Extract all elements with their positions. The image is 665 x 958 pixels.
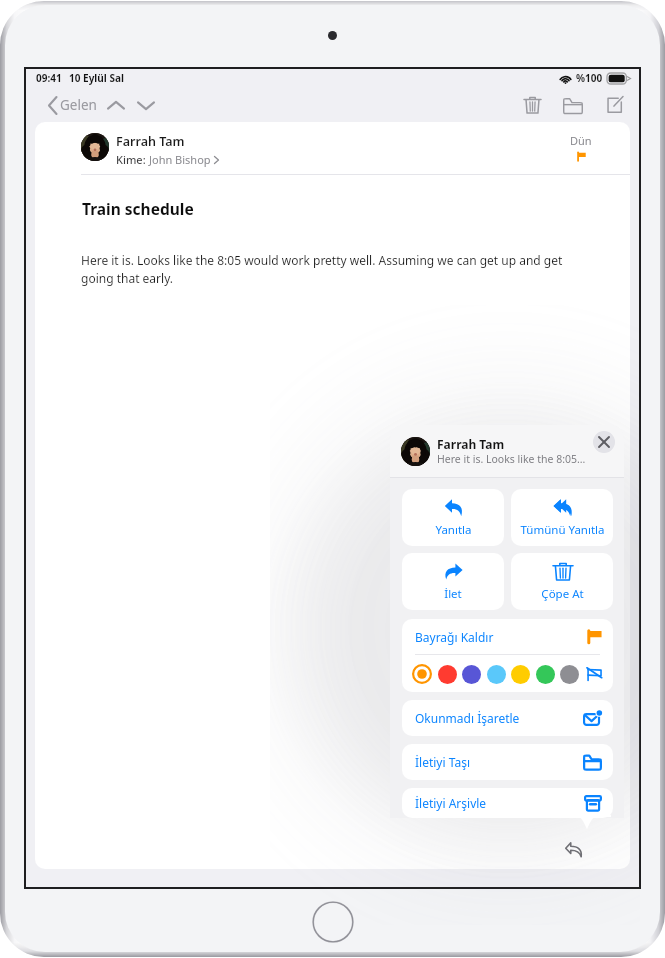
button[interactable]: Flag color <box>412 664 432 684</box>
button[interactable]: Yanıtla <box>402 489 504 546</box>
staticText: Here it is. Looks like the 8:05 would wo… <box>81 252 578 287</box>
staticText: Train schedule <box>82 198 194 219</box>
button[interactable]: İlet <box>402 553 504 610</box>
button[interactable]: Çöpe At <box>511 553 613 610</box>
staticText: Yanıtla <box>435 522 472 538</box>
staticText: Farrah Tam <box>116 133 185 150</box>
staticText: İletiyi Taşı <box>415 754 470 770</box>
staticText: Okunmadı İşaretle <box>415 710 520 726</box>
button[interactable]: Okunmadı İşaretle <box>402 700 613 736</box>
staticText: Kime: <box>116 152 149 167</box>
button[interactable]: Flag color <box>510 664 530 684</box>
staticText: İlet <box>444 586 462 602</box>
button[interactable]: Next message <box>133 92 159 118</box>
button[interactable]: Move to folder <box>558 90 588 120</box>
button[interactable]: Flag color <box>461 664 481 684</box>
button[interactable]: Flag color <box>535 664 555 684</box>
staticText: Tümünü Yanıtla <box>520 522 605 538</box>
button[interactable]: Compose <box>599 90 629 120</box>
button[interactable]: İletiyi Arşivle <box>402 788 613 818</box>
button[interactable]: Tümünü Yanıtla <box>511 489 613 546</box>
button[interactable]: İletiyi Taşı <box>402 744 613 780</box>
staticText: Bayrağı Kaldır <box>415 629 494 645</box>
staticText: 09:41 <box>36 71 62 85</box>
staticText: John Bishop <box>149 152 211 167</box>
button[interactable]: Reply <box>560 835 588 863</box>
staticText: Gelen <box>60 96 97 114</box>
button[interactable]: Bayrağı Kaldır <box>402 619 613 654</box>
button[interactable]: Flag color <box>437 664 457 684</box>
staticText: 10 Eylül Sal <box>69 71 124 85</box>
button[interactable]: Flag color <box>486 664 506 684</box>
button[interactable]: Previous message <box>103 92 129 118</box>
button[interactable]: Gelen <box>44 92 101 118</box>
button[interactable]: Close <box>593 431 615 453</box>
staticText: Farrah Tam <box>437 436 505 452</box>
button[interactable]: Delete <box>517 90 547 120</box>
staticText: İletiyi Arşivle <box>415 795 487 811</box>
button[interactable]: No flag <box>584 664 603 683</box>
staticText: Dün <box>570 133 592 148</box>
staticText: Çöpe At <box>541 586 584 602</box>
staticText: Here it is. Looks like the 8:05… <box>437 452 586 466</box>
button[interactable]: Flag color <box>559 664 579 684</box>
staticText: %100 <box>576 71 603 85</box>
